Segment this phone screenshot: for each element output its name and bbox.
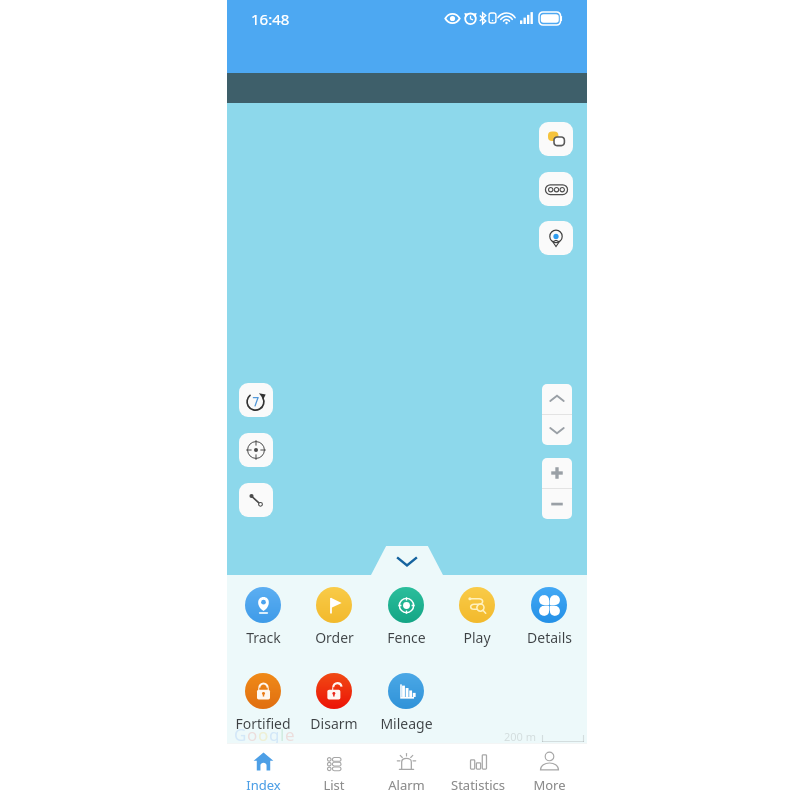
button[interactable]: Collapse panel <box>371 546 443 575</box>
staticText: More <box>533 776 566 794</box>
staticText: Details <box>527 628 572 647</box>
staticText: Index <box>246 776 281 794</box>
staticText: Mileage <box>380 714 433 733</box>
staticText: l <box>280 723 285 746</box>
staticText: 200 m <box>504 729 537 744</box>
staticText: e <box>285 723 295 746</box>
staticText: 16:48 <box>251 9 290 29</box>
staticText: G <box>234 723 247 746</box>
button[interactable]: Disarm <box>300 673 368 733</box>
button[interactable]: Zoom out <box>542 489 572 519</box>
staticText: Fence <box>387 628 426 647</box>
button[interactable]: Fence <box>372 587 440 647</box>
staticText: Statistics <box>451 776 505 794</box>
button[interactable]: Fortified <box>229 673 297 733</box>
staticText: Order <box>315 628 354 647</box>
staticText: o <box>247 723 258 746</box>
button[interactable]: Play <box>443 587 511 647</box>
button[interactable]: Track <box>229 587 297 647</box>
staticText: Fortified <box>235 714 291 733</box>
staticText: Alarm <box>388 776 425 794</box>
staticText: o <box>258 723 269 746</box>
button[interactable]: My location <box>539 221 573 255</box>
button[interactable]: Refresh <box>239 383 273 417</box>
button[interactable]: Previous <box>542 384 572 414</box>
button[interactable]: Statistics <box>445 751 511 794</box>
button[interactable]: Order <box>300 587 368 647</box>
button[interactable]: List <box>301 751 367 794</box>
button[interactable]: Measure distance <box>239 483 273 517</box>
staticText: List <box>323 776 345 794</box>
button[interactable]: More <box>516 751 582 794</box>
button[interactable]: Index <box>230 751 296 794</box>
button[interactable]: Alarm <box>373 751 439 794</box>
staticText: g <box>269 723 280 746</box>
button[interactable]: Center map <box>239 433 273 467</box>
button[interactable]: Details <box>515 587 583 647</box>
button[interactable]: Map layers <box>539 122 573 156</box>
button[interactable]: Mileage <box>372 673 440 733</box>
button[interactable]: Next <box>542 415 572 445</box>
button[interactable]: Trackers <box>539 172 573 206</box>
staticText: Track <box>246 628 281 647</box>
staticText: Play <box>463 628 491 647</box>
staticText: Disarm <box>310 714 358 733</box>
button[interactable]: Zoom in <box>542 458 572 488</box>
